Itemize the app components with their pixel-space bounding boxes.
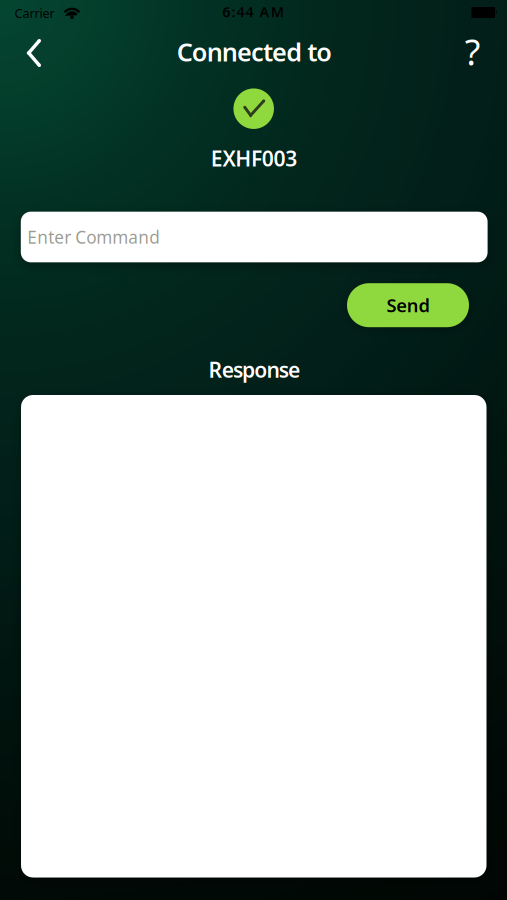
staticText: Response <box>208 355 300 384</box>
button[interactable]: Help <box>455 23 491 80</box>
button[interactable]: Send <box>347 283 469 327</box>
staticText: Carrier <box>14 5 54 22</box>
textField[interactable]: Enter Command <box>27 225 160 249</box>
button[interactable]: Back <box>17 33 51 73</box>
staticText: ? <box>465 27 481 76</box>
staticText: EXHF003 <box>211 144 297 172</box>
staticText: Send <box>386 293 430 318</box>
staticText: Enter Command <box>27 225 160 249</box>
staticText: Connected to <box>177 35 332 69</box>
staticText: 6:44 AM <box>222 2 284 21</box>
